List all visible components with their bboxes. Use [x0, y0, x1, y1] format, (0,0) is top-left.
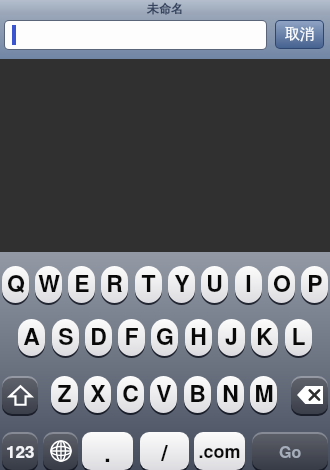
- button[interactable]: /: [140, 432, 189, 470]
- button[interactable]: J: [218, 319, 245, 356]
- staticText: .com: [198, 438, 241, 464]
- staticText: E: [74, 266, 90, 299]
- staticText: K: [256, 319, 273, 352]
- button[interactable]: C: [117, 376, 144, 413]
- staticText: .: [104, 436, 111, 469]
- staticText: Z: [57, 376, 72, 409]
- staticText: U: [206, 266, 223, 299]
- button[interactable]: B: [184, 376, 211, 413]
- staticText: Go: [279, 440, 302, 463]
- button[interactable]: D: [85, 319, 112, 356]
- button[interactable]: A: [18, 319, 45, 356]
- button[interactable]: [5, 21, 266, 49]
- staticText: O: [273, 266, 291, 299]
- button[interactable]: Z: [51, 376, 78, 413]
- button[interactable]: H: [185, 319, 212, 356]
- staticText: I: [245, 266, 252, 299]
- button[interactable]: V: [150, 376, 177, 413]
- staticText: M: [254, 376, 274, 409]
- button[interactable]: L: [285, 319, 312, 356]
- staticText: C: [122, 376, 139, 409]
- staticText: N: [222, 376, 239, 409]
- button[interactable]: N: [217, 376, 244, 413]
- button[interactable]: M: [250, 376, 277, 413]
- staticText: R: [106, 266, 123, 299]
- button[interactable]: Shift: [2, 376, 38, 414]
- button[interactable]: U: [201, 266, 228, 303]
- button[interactable]: S: [52, 319, 79, 356]
- button[interactable]: 123: [2, 432, 38, 470]
- button[interactable]: R: [101, 266, 128, 303]
- staticText: A: [23, 319, 40, 352]
- staticText: D: [90, 319, 107, 352]
- button[interactable]: I: [235, 266, 262, 303]
- button[interactable]: T: [135, 266, 162, 303]
- button[interactable]: K: [251, 319, 278, 356]
- staticText: J: [225, 319, 238, 352]
- staticText: F: [124, 319, 139, 352]
- staticText: 未命名: [147, 1, 183, 16]
- button[interactable]: P: [301, 266, 328, 303]
- button[interactable]: G: [151, 319, 178, 356]
- button[interactable]: .com: [194, 432, 245, 470]
- staticText: B: [189, 376, 206, 409]
- staticText: X: [90, 376, 106, 409]
- staticText: H: [190, 319, 207, 352]
- button[interactable]: O: [268, 266, 295, 303]
- staticText: Y: [174, 266, 190, 299]
- button[interactable]: W: [35, 266, 62, 303]
- staticText: G: [156, 319, 174, 352]
- button[interactable]: F: [118, 319, 145, 356]
- staticText: Q: [7, 266, 25, 299]
- staticText: P: [307, 266, 323, 299]
- staticText: S: [58, 319, 74, 352]
- button[interactable]: 取消: [276, 21, 323, 48]
- button[interactable]: Backspace: [291, 376, 328, 414]
- button[interactable]: E: [68, 266, 95, 303]
- button[interactable]: Go: [252, 432, 328, 470]
- staticText: T: [141, 266, 156, 299]
- staticText: 123: [6, 439, 35, 463]
- staticText: V: [156, 376, 172, 409]
- staticText: /: [161, 435, 168, 468]
- button[interactable]: Y: [168, 266, 195, 303]
- button[interactable]: Change keyboard: [43, 432, 78, 470]
- staticText: 取消: [285, 25, 315, 44]
- staticText: W: [38, 266, 60, 299]
- button[interactable]: Q: [2, 266, 29, 303]
- button[interactable]: X: [84, 376, 111, 413]
- button[interactable]: .: [82, 432, 133, 470]
- staticText: L: [291, 319, 306, 352]
